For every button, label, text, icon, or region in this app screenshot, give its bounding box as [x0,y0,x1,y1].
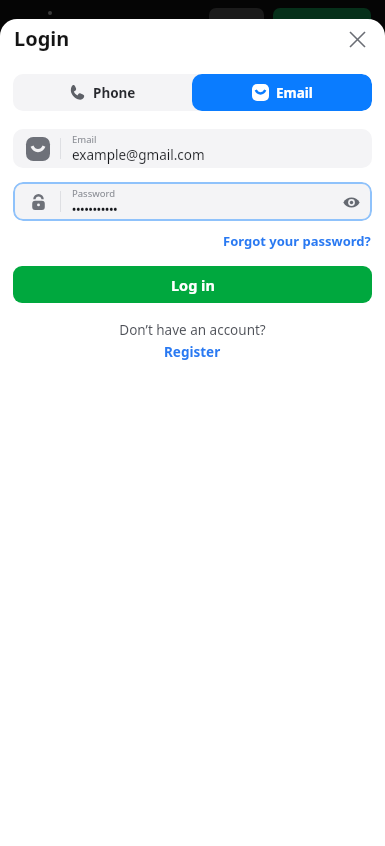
staticText: Email [276,84,313,102]
staticText: Email [72,133,97,146]
staticText: ••••••••••• [72,201,118,216]
staticText: Forgot your password? [223,232,371,250]
staticText: Register [164,343,221,361]
button[interactable]: Register [164,343,221,361]
button[interactable]: Email [13,129,372,168]
button[interactable]: Password [13,182,372,221]
button[interactable]: Phone [13,74,192,111]
staticText: Password [72,187,115,200]
button[interactable]: Show password [336,187,366,217]
button[interactable]: Forgot your password? [223,232,371,250]
button[interactable]: Log in [13,266,372,303]
button[interactable]: Close [343,25,371,53]
staticText: example@gmail.com [72,146,205,164]
staticText: Login [14,25,70,52]
button[interactable]: Email [192,74,372,111]
staticText: Phone [93,84,136,102]
staticText: Log in [171,275,215,295]
staticText: Don’t have an account? [119,321,266,339]
